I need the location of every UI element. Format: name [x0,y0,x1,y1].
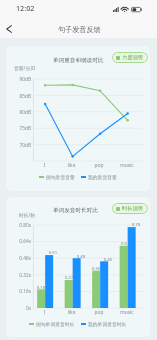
staticText: 时长/秒 [6,212,35,219]
staticText: 12:02 [16,3,35,13]
staticText: 0.80s [6,222,31,229]
staticText: 0.27 [60,274,78,280]
staticText: 0.48s [6,255,31,262]
staticText: 70dB [6,142,31,149]
staticText: 0.36 [87,265,105,271]
staticText: 单词重音和弱读对比 [53,57,104,64]
staticText: 0.6 [115,240,133,246]
staticText: 0.64s [6,238,31,245]
staticText: like [58,162,85,169]
staticText: music [113,162,141,169]
staticText: I [31,309,58,316]
staticText: 0.32s [6,272,31,279]
staticText: 0.45 [99,256,117,262]
staticText: 我的发音音量 [88,174,117,180]
staticText: 例句发音音量 [46,174,75,180]
staticText: 力度说明 [122,54,143,61]
button[interactable]: 力度说明 [112,52,148,63]
staticText: 单词发音时长对比 [53,207,98,214]
staticText: 0.18 [32,284,50,290]
button[interactable]: 时长说明 [112,203,148,214]
staticText: 时长说明 [122,205,143,212]
staticText: 句子发音反馈 [58,25,101,34]
staticText: 75dB [6,125,31,132]
staticText: 0.16s [6,288,31,295]
staticText: 85dB [6,93,31,100]
staticText: like [58,309,85,316]
staticText: 音量/分贝 [6,65,35,72]
staticText: 0.48 [72,253,90,259]
staticText: I [31,162,58,169]
staticText: pop [85,162,113,169]
staticText: 0.78 [127,221,145,227]
staticText: 0.51 [44,249,62,255]
staticText: 例句单词发音时长 [36,321,75,327]
button[interactable]: Back [0,20,17,37]
staticText: 我的单词发音时长 [88,321,127,327]
staticText: 90dB [6,76,31,83]
staticText: 0s [6,305,31,312]
staticText: 80dB [6,109,31,116]
staticText: pop [85,309,113,316]
staticText: music [113,309,141,316]
